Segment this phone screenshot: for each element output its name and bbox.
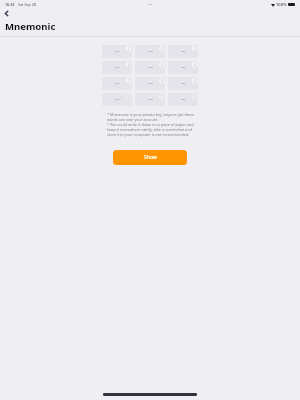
button[interactable]: ••• — [102, 45, 132, 58]
staticText: 8 — [161, 79, 163, 83]
staticText: ••• — [115, 97, 120, 103]
button[interactable]: ••• — [135, 93, 165, 106]
button[interactable]: ••• — [168, 77, 198, 90]
button[interactable]: Back — [0, 7, 12, 19]
staticText: Sat Sep 28 — [18, 2, 36, 7]
staticText: 7 — [128, 79, 130, 83]
staticText: 16:33 — [5, 2, 15, 7]
button[interactable]: ••• — [168, 93, 198, 106]
button[interactable]: ••• — [168, 61, 198, 74]
button[interactable]: ••• — [135, 45, 165, 58]
staticText: 6 — [194, 63, 196, 67]
staticText: ••• — [115, 49, 120, 55]
staticText: 11 — [160, 95, 164, 99]
button[interactable]: ••• — [168, 45, 198, 58]
staticText: ••• — [181, 49, 186, 55]
staticText: 1 — [128, 47, 130, 51]
staticText: ••• — [181, 65, 186, 71]
staticText: 9 — [194, 79, 196, 83]
staticText: Show — [144, 154, 157, 161]
staticText: 100% — [276, 2, 287, 8]
staticText: ••• — [148, 65, 153, 71]
staticText: * Mnemonic is your private key, anyone g… — [107, 112, 199, 137]
staticText: Mnemonic — [5, 20, 56, 33]
staticText: ••• — [148, 49, 153, 55]
staticText: 12 — [193, 95, 197, 99]
button[interactable]: ••• — [135, 77, 165, 90]
button[interactable]: ••• — [102, 77, 132, 90]
staticText: 10 — [127, 95, 131, 99]
button[interactable]: ••• — [102, 93, 132, 106]
staticText: ••• — [115, 81, 120, 87]
staticText: 3 — [194, 47, 196, 51]
staticText: ••• — [148, 97, 153, 103]
staticText: ••• — [148, 2, 153, 7]
staticText: ••• — [148, 81, 153, 87]
staticText: ••• — [181, 81, 186, 87]
button[interactable]: Show — [113, 150, 187, 165]
staticText: 2 — [161, 47, 163, 51]
staticText: 4 — [128, 63, 130, 67]
staticText: ••• — [115, 65, 120, 71]
button[interactable]: ••• — [135, 61, 165, 74]
button[interactable]: ••• — [102, 61, 132, 74]
staticText: 5 — [161, 63, 163, 67]
staticText: ••• — [181, 97, 186, 103]
